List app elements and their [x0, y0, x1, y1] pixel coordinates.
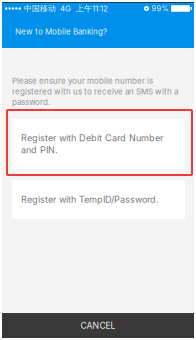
staticText: 99%: [151, 4, 168, 13]
staticText: Register with TempID/Password.: [21, 194, 159, 205]
button[interactable]: CANCEL: [2, 313, 194, 338]
staticText: 上午11:12: [76, 3, 108, 14]
staticText: New to Mobile Banking?: [15, 27, 107, 36]
button[interactable]: Register with Debit Card Number and PIN.: [12, 119, 185, 169]
staticText: CANCEL: [80, 320, 115, 331]
staticText: 4G: [60, 4, 71, 13]
button[interactable]: Register with TempID/Password.: [12, 180, 185, 219]
staticText: 中国移动: [24, 3, 56, 14]
staticText: Please ensure your mobile number is regi…: [12, 76, 178, 107]
staticText: Register with Debit Card Number and PIN.: [21, 133, 163, 155]
